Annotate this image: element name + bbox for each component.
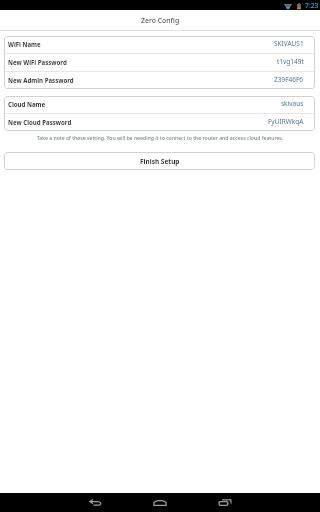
- staticText: New Admin Password: [8, 76, 74, 84]
- button[interactable]: Back: [74, 493, 116, 512]
- staticText: WiFi Name: [8, 40, 41, 48]
- button[interactable]: New WiFi Password: [4, 54, 315, 71]
- button[interactable]: New Cloud Password: [4, 114, 315, 131]
- staticText: 7:23: [305, 1, 319, 10]
- staticText: Take a note of these setting. You will b…: [10, 134, 310, 141]
- staticText: Zero Config: [141, 16, 180, 25]
- staticText: Z39F46F6: [274, 75, 304, 84]
- staticText: skivaus: [281, 99, 304, 108]
- staticText: Finish Setup: [140, 157, 180, 166]
- button[interactable]: Cloud Name: [4, 96, 315, 113]
- staticText: New WiFi Password: [8, 58, 67, 66]
- staticText: SKIVAUS1: [274, 39, 304, 48]
- staticText: New Cloud Password: [8, 118, 72, 126]
- staticText: Cloud Name: [8, 100, 46, 108]
- staticText: t1vg149t: [277, 57, 304, 66]
- button[interactable]: Recent apps: [204, 493, 246, 512]
- button[interactable]: New Admin Password: [4, 72, 315, 89]
- button[interactable]: WiFi Name: [4, 36, 315, 53]
- staticText: FyUIRWkqA: [268, 117, 304, 126]
- button[interactable]: Finish Setup: [4, 152, 315, 170]
- button[interactable]: Home: [139, 493, 181, 512]
